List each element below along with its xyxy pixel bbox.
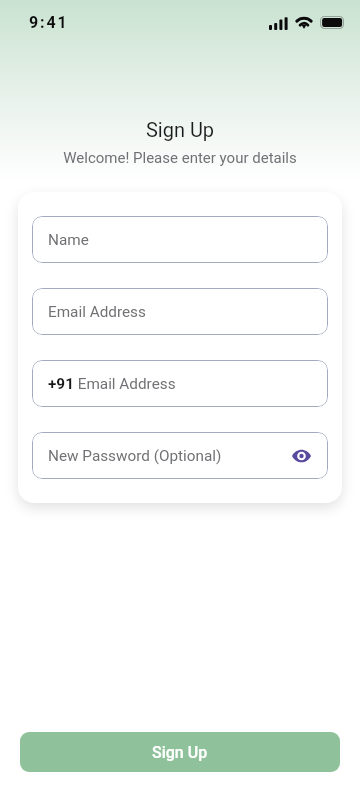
staticText: 9:41: [29, 13, 69, 32]
staticText: Sign Up: [0, 118, 360, 141]
staticText: New Password (Optional): [48, 447, 222, 465]
button[interactable]: Sign Up: [20, 732, 340, 772]
button[interactable]: Show password: [289, 444, 313, 468]
button[interactable]: +91 Email Address: [32, 360, 328, 407]
staticText: +91 Email Address: [48, 375, 176, 393]
staticText: Email Address: [48, 303, 146, 321]
button[interactable]: New Password (Optional): [32, 432, 328, 479]
staticText: Name: [48, 231, 89, 249]
staticText: Sign Up: [152, 743, 208, 762]
button[interactable]: Name: [32, 216, 328, 263]
button[interactable]: Email Address: [32, 288, 328, 335]
staticText: Welcome! Please enter your details: [0, 149, 360, 167]
